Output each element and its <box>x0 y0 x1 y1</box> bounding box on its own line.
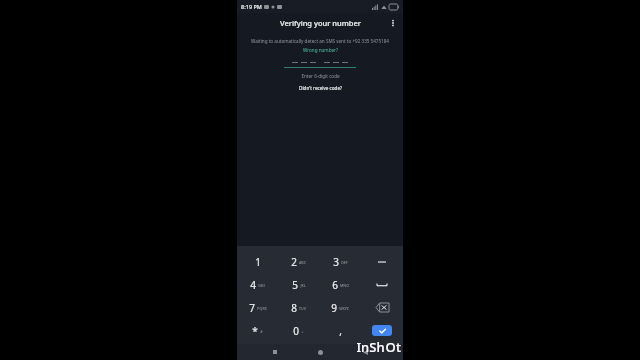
button[interactable]: 1 <box>237 250 278 273</box>
staticText: Didn't receive code? <box>299 85 342 91</box>
staticText: , <box>339 324 342 338</box>
button[interactable]: Enter <box>361 319 403 342</box>
staticText: 6 <box>332 278 338 292</box>
staticText: WXYZ <box>339 306 349 311</box>
button[interactable]: 6 <box>319 273 361 296</box>
staticText: GHI <box>258 283 265 288</box>
staticText: 4 <box>250 278 256 292</box>
staticText: 5 <box>292 278 298 292</box>
button[interactable]: Home <box>313 345 327 359</box>
button[interactable]: 0 <box>278 319 319 342</box>
button[interactable]: 2 <box>278 250 319 273</box>
staticText: ABC <box>299 260 306 265</box>
button[interactable]: 4 <box>237 273 278 296</box>
button[interactable]: Wrong number? <box>301 46 340 54</box>
staticText: O <box>385 338 396 356</box>
staticText: 7 <box>249 301 255 315</box>
staticText: 1 <box>255 255 261 269</box>
staticText: 3 <box>333 255 339 269</box>
button[interactable]: Backspace <box>361 296 403 319</box>
button[interactable]: 9 <box>319 296 361 319</box>
staticText: Verifying your number <box>280 18 361 28</box>
staticText: 2 <box>291 255 297 269</box>
button[interactable]: * <box>237 319 278 342</box>
staticText: # <box>260 329 263 334</box>
staticText: * <box>252 324 258 338</box>
staticText: InSh <box>356 338 385 356</box>
staticText: t <box>396 338 401 356</box>
button[interactable]: Space <box>361 273 403 296</box>
staticText: PQRS <box>257 306 267 311</box>
staticText: TUV <box>299 306 306 311</box>
button[interactable]: Dash <box>361 250 403 273</box>
button[interactable]: 5 <box>278 273 319 296</box>
staticText: Waiting to automatically detect an SMS s… <box>251 38 389 44</box>
staticText: MNO <box>340 283 349 288</box>
button[interactable]: Back <box>358 345 372 359</box>
button[interactable]: 7 <box>237 296 278 319</box>
button[interactable]: 8 <box>278 296 319 319</box>
staticText: Wrong number? <box>303 47 338 53</box>
button[interactable]: More options <box>386 16 400 30</box>
button[interactable]: , <box>319 319 361 342</box>
staticText: DEF <box>341 260 348 265</box>
staticText: JKL <box>300 283 306 288</box>
button[interactable]: Didn't receive code? <box>297 84 344 92</box>
staticText: Enter 6-digit code <box>301 73 340 79</box>
staticText: 8:19 PM <box>241 3 262 10</box>
button[interactable]: Recent apps <box>268 345 282 359</box>
staticText: 8 <box>291 301 297 315</box>
staticText: 0 <box>293 324 299 338</box>
staticText: + <box>301 329 304 334</box>
staticText: 9 <box>331 301 337 315</box>
button[interactable]: 3 <box>319 250 361 273</box>
